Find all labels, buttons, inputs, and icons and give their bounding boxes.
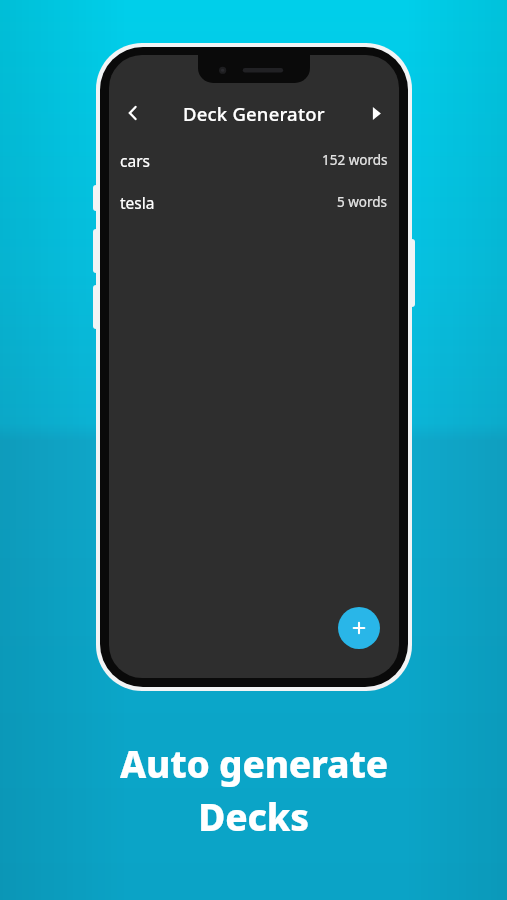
staticText: tesla bbox=[120, 192, 155, 213]
button[interactable]: cars bbox=[109, 139, 399, 181]
staticText: Decks bbox=[198, 791, 309, 841]
staticText: Deck Generator bbox=[183, 101, 325, 126]
staticText: 5 words bbox=[337, 193, 388, 211]
button[interactable]: Add deck bbox=[338, 607, 380, 649]
button[interactable]: Generate bbox=[361, 98, 391, 128]
staticText: 152 words bbox=[322, 151, 388, 169]
button[interactable]: tesla bbox=[109, 181, 399, 223]
staticText: Auto generate bbox=[120, 738, 388, 788]
staticText: cars bbox=[120, 150, 150, 171]
button[interactable]: Back bbox=[117, 97, 149, 129]
